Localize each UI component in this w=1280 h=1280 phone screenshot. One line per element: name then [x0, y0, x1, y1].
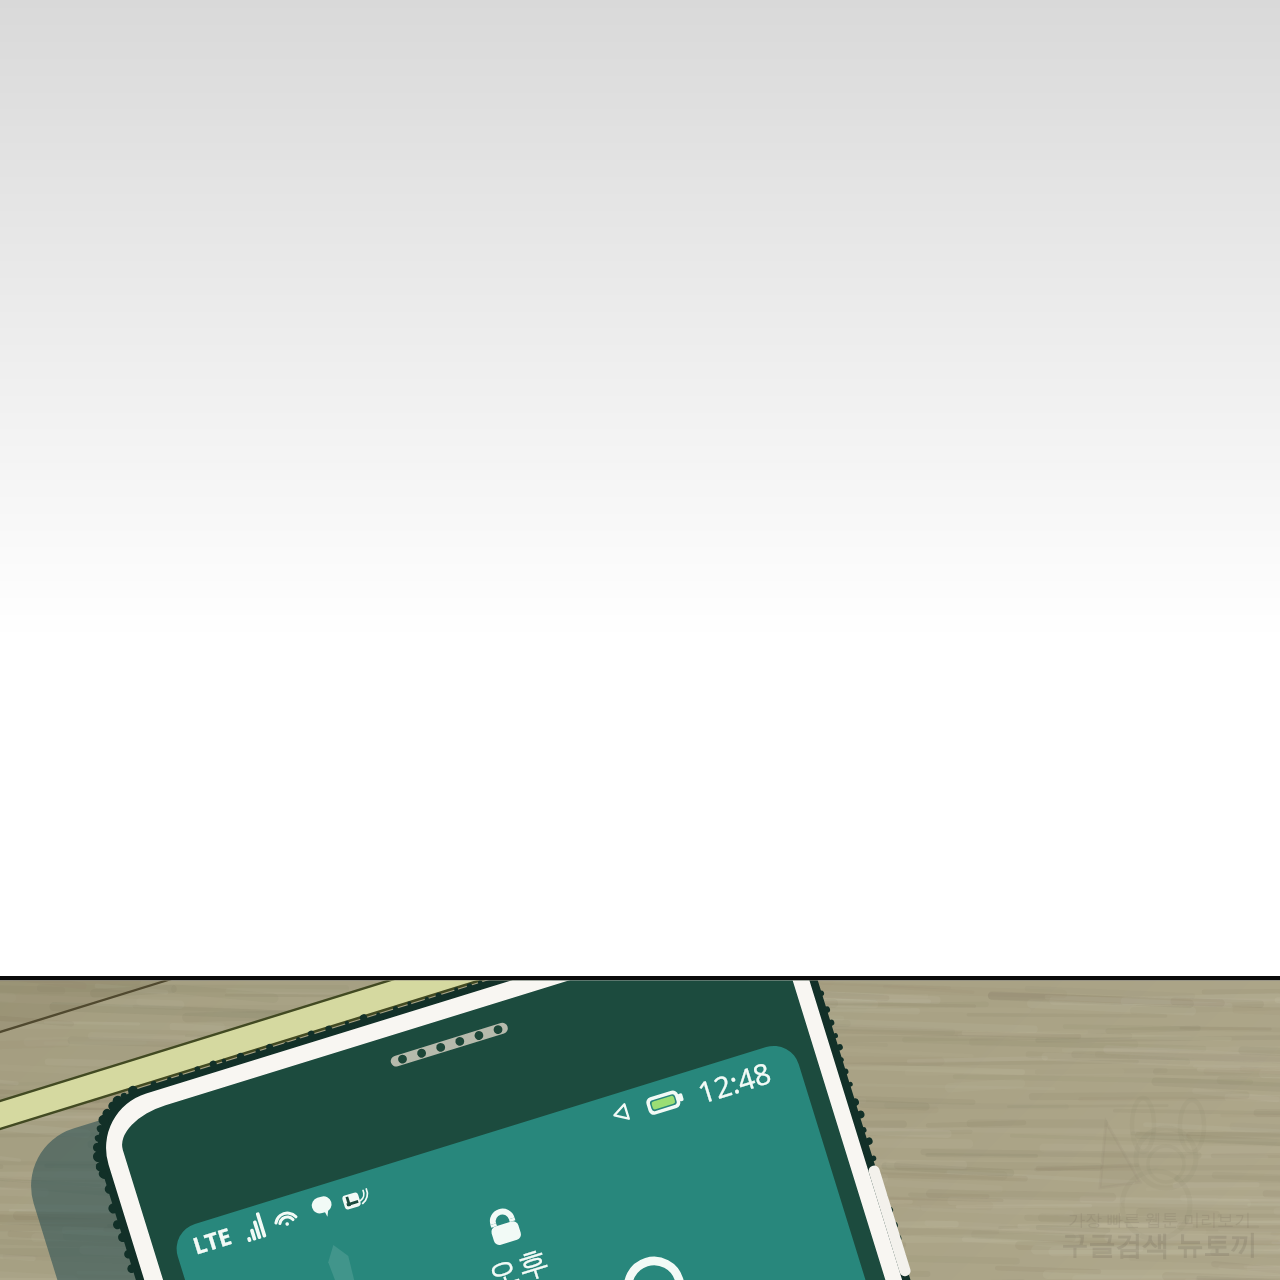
button[interactable]: Unlock — [476, 1200, 532, 1256]
button[interactable]: Phone lock screen — [160, 1040, 860, 1280]
button[interactable]: Camera shortcut — [614, 1240, 694, 1280]
